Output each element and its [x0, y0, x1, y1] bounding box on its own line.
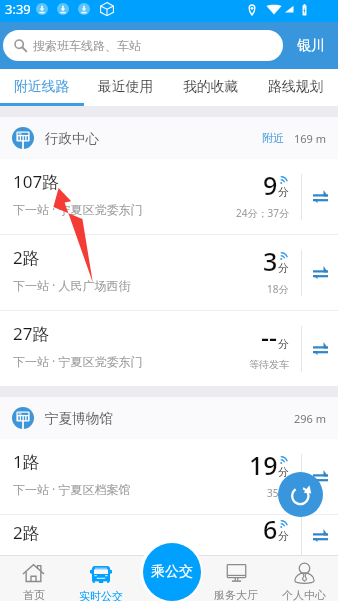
staticText: 银川: [297, 37, 325, 55]
button[interactable]: 首页: [0, 556, 67, 601]
button[interactable]: Reverse direction: [302, 311, 338, 386]
staticText: 首页: [23, 588, 45, 601]
button[interactable]: 宁夏博物馆: [0, 397, 338, 439]
button[interactable]: 银川: [283, 22, 338, 69]
staticText: 宁夏博物馆: [45, 410, 113, 427]
button[interactable]: 附近线路: [0, 69, 84, 103]
staticText: 下一站 · 人民广场西街: [13, 277, 131, 293]
staticText: 最近使用: [98, 78, 154, 95]
staticText: 27路: [13, 322, 50, 345]
staticText: 附近线路: [14, 78, 70, 95]
button[interactable]: 行政中心: [0, 117, 338, 159]
staticText: 下一站 · 宁夏区党委东门: [13, 201, 143, 217]
button[interactable]: 107路: [0, 159, 338, 234]
button[interactable]: Refresh: [278, 472, 323, 517]
staticText: 我的收藏: [183, 78, 239, 95]
staticText: 附近: [262, 131, 284, 145]
button[interactable]: 最近使用: [84, 69, 168, 103]
button[interactable]: 2路: [0, 235, 338, 310]
staticText: 3: [263, 244, 278, 278]
staticText: 乘公交: [151, 563, 193, 581]
staticText: 2路: [13, 521, 40, 544]
staticText: 搜索班车线路、车站: [33, 38, 141, 53]
staticText: 下一站 · 宁夏区党委东门: [13, 353, 143, 369]
staticText: 分: [278, 261, 289, 275]
staticText: 24分；37分: [236, 206, 289, 220]
button[interactable]: Reverse direction: [302, 515, 338, 555]
button[interactable]: 27路: [0, 311, 338, 386]
staticText: 9: [263, 168, 278, 202]
staticText: 35分: [267, 486, 289, 500]
staticText: 18分: [267, 282, 289, 296]
button[interactable]: 个人中心: [270, 556, 338, 601]
staticText: 2路: [13, 246, 40, 269]
button[interactable]: Reverse direction: [302, 235, 338, 310]
staticText: 3:39: [5, 0, 31, 18]
staticText: 19: [249, 448, 278, 482]
staticText: 下一站 · 宁夏区档案馆: [13, 481, 131, 497]
button[interactable]: 路线规划: [253, 69, 338, 103]
staticText: 个人中心: [282, 588, 326, 601]
button[interactable]: 实时公交: [67, 556, 134, 601]
button[interactable]: Reverse direction: [302, 159, 338, 234]
staticText: 等待发车: [249, 358, 289, 371]
staticText: 169 m: [294, 131, 327, 146]
staticText: 6: [263, 512, 278, 546]
button[interactable]: 服务大厅: [202, 556, 270, 601]
staticText: --: [261, 320, 278, 354]
button[interactable]: 我的收藏: [168, 69, 253, 103]
button[interactable]: 1路: [0, 439, 338, 514]
staticText: 1路: [13, 450, 40, 473]
staticText: 服务大厅: [214, 588, 258, 601]
staticText: 107路: [13, 170, 60, 193]
staticText: 路线规划: [268, 78, 324, 95]
staticText: 分: [278, 337, 289, 351]
button[interactable]: 搜索班车线路、车站: [3, 30, 283, 61]
button[interactable]: 乘公交: [140, 540, 203, 601]
staticText: 分: [278, 185, 289, 199]
staticText: 分: [278, 529, 289, 543]
button[interactable]: 2路: [0, 515, 338, 555]
staticText: 实时公交: [79, 589, 123, 601]
staticText: 296 m: [294, 411, 327, 426]
button[interactable]: Reverse direction: [302, 439, 338, 514]
staticText: 分: [278, 465, 289, 479]
staticText: 行政中心: [45, 130, 99, 147]
